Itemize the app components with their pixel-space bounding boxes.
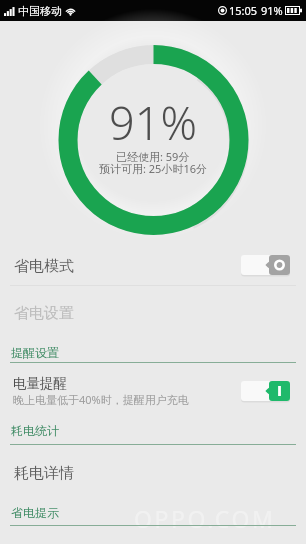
staticText: 耗电详情 [14,464,74,483]
staticText: 省电提示 [11,505,59,520]
staticText: 省电模式 [14,257,74,276]
staticText: 晚上电量低于40%时，提醒用户充电 [13,392,189,407]
staticText: 电量提醒 [13,375,67,392]
staticText: 已经使用: 59分 [116,149,190,164]
button[interactable]: 省电设置 [0,292,306,334]
staticText: 中国移动 [18,4,62,18]
button[interactable]: 省电模式 [0,245,306,287]
staticText: 15:05 [229,3,258,18]
staticText: 耗电统计 [11,423,59,438]
staticText: 提醒设置 [11,345,59,360]
staticText: 91% [109,92,197,153]
staticText: OPPO.COM [134,503,276,534]
button[interactable]: 耗电详情 [0,452,306,494]
staticText: 省电设置 [14,304,74,323]
button[interactable]: 省电模式开关，已关闭 [241,255,290,275]
button[interactable]: 电量提醒开关，已开启 [241,381,290,401]
button[interactable]: 电量提醒 [0,370,306,414]
staticText: 91% [261,3,283,18]
staticText: 预计可用: 25小时16分 [99,161,207,176]
